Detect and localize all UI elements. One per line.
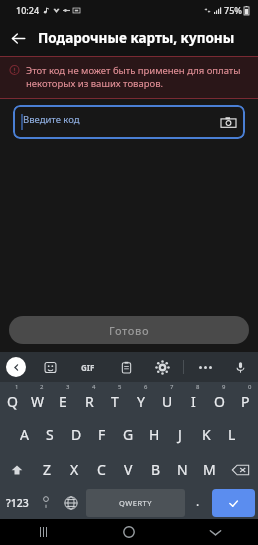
button[interactable]: Backspace	[223, 452, 258, 487]
staticText: J	[178, 425, 182, 444]
button[interactable]: M	[196, 452, 223, 487]
button[interactable]: J	[167, 417, 193, 452]
button[interactable]: N	[169, 452, 196, 487]
button[interactable]: 7	[154, 382, 180, 417]
button[interactable]: Home	[86, 519, 172, 545]
button[interactable]: X	[61, 452, 88, 487]
button[interactable]: 6	[128, 382, 154, 417]
staticText: N	[177, 460, 188, 479]
staticText: GIF	[81, 362, 95, 373]
button[interactable]: 4	[76, 382, 102, 417]
staticText: R	[85, 392, 94, 411]
staticText: T	[111, 392, 119, 411]
staticText: M	[203, 460, 216, 479]
button[interactable]: QWERTY	[86, 489, 185, 517]
button[interactable]: More options	[193, 355, 217, 379]
button[interactable]: 5	[102, 382, 128, 417]
staticText: Q	[7, 392, 18, 411]
button[interactable]: L	[219, 417, 245, 452]
staticText: 9	[222, 383, 226, 391]
button[interactable]: H	[141, 417, 167, 452]
staticText: Введите код	[23, 113, 80, 126]
staticText: 0	[248, 383, 252, 391]
button[interactable]: Clipboard	[114, 355, 138, 379]
button[interactable]: D	[63, 417, 89, 452]
staticText: I	[191, 392, 196, 411]
button[interactable]: 2	[25, 382, 50, 417]
button[interactable]: Z	[34, 452, 61, 487]
button[interactable]: C	[88, 452, 115, 487]
staticText: D	[71, 425, 82, 444]
staticText: 10:24	[16, 4, 40, 16]
button[interactable]: 9	[206, 382, 232, 417]
staticText: 75%	[224, 4, 242, 16]
staticText: E	[59, 392, 67, 411]
button[interactable]: F	[89, 417, 115, 452]
staticText: X	[70, 460, 79, 479]
button[interactable]: GIF	[74, 355, 102, 379]
button[interactable]: Change language	[57, 489, 84, 517]
staticText: 4	[92, 383, 96, 391]
button[interactable]: Back	[0, 20, 36, 56]
staticText: Этот код не может быть применен для опла…	[26, 64, 248, 90]
staticText: L	[228, 425, 236, 444]
button[interactable]: Scan code with camera	[217, 111, 239, 133]
button[interactable]: 0	[232, 382, 258, 417]
staticText: H	[149, 425, 160, 444]
button[interactable]: Emoji	[35, 489, 57, 517]
staticText: 2	[40, 383, 44, 391]
staticText: 3	[66, 383, 70, 391]
button[interactable]: Hide keyboard	[172, 519, 258, 545]
button[interactable]: 3	[50, 382, 76, 417]
staticText: S	[46, 425, 54, 444]
button[interactable]: Shift	[0, 452, 34, 487]
staticText: Подарочные карты, купоны	[38, 29, 235, 47]
button[interactable]: .	[187, 489, 209, 517]
button[interactable]: ?123	[0, 489, 35, 517]
staticText: ?123	[6, 496, 29, 510]
button[interactable]: Enter	[212, 489, 255, 517]
button[interactable]: Expand toolbar	[6, 357, 26, 377]
staticText: Y	[137, 392, 145, 411]
staticText: Z	[43, 460, 52, 479]
button[interactable]: V	[115, 452, 142, 487]
staticText: 5	[118, 383, 122, 391]
button[interactable]: G	[115, 417, 141, 452]
button[interactable]: Stickers	[38, 355, 62, 379]
staticText: 6	[144, 383, 148, 391]
staticText: 7	[170, 383, 174, 391]
button[interactable]: Keyboard settings	[150, 355, 174, 379]
button[interactable]: Готово	[9, 316, 249, 344]
button[interactable]: 8	[180, 382, 206, 417]
staticText: O	[214, 392, 225, 411]
button[interactable]: Voice input	[228, 355, 252, 379]
button[interactable]: Recent apps	[0, 519, 86, 545]
button[interactable]: 1	[0, 382, 25, 417]
staticText: G	[123, 425, 134, 444]
staticText: Готово	[109, 323, 150, 338]
staticText: B	[151, 460, 161, 479]
staticText: K	[202, 425, 211, 444]
staticText: V	[124, 460, 133, 479]
button[interactable]: S	[37, 417, 63, 452]
button[interactable]: B	[142, 452, 169, 487]
staticText: C	[97, 460, 106, 479]
staticText: F	[98, 425, 106, 444]
staticText: 1	[15, 383, 19, 391]
staticText: .	[196, 493, 200, 509]
button[interactable]: Введите код	[13, 105, 245, 139]
staticText: U	[162, 392, 173, 411]
staticText: QWERTY	[119, 498, 153, 508]
staticText: 8	[196, 383, 200, 391]
staticText: W	[31, 392, 45, 411]
button[interactable]: A	[12, 417, 37, 452]
button[interactable]: K	[193, 417, 219, 452]
staticText: A	[20, 425, 29, 444]
staticText: P	[241, 392, 250, 411]
